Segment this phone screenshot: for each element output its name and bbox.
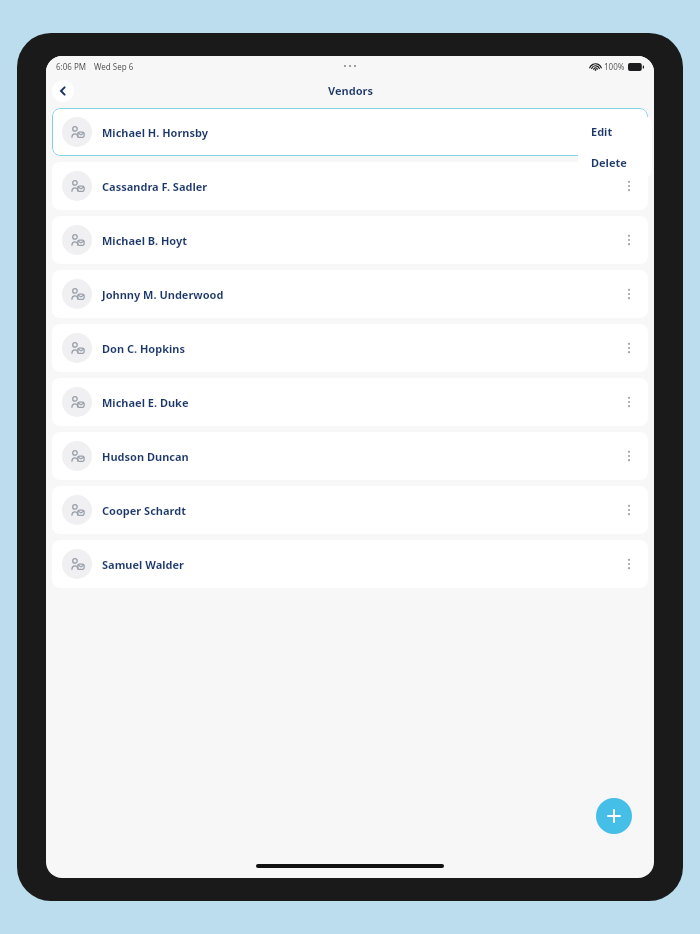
staticText: Cassandra F. Sadler [102, 179, 208, 194]
button[interactable]: Samuel Walder [52, 540, 648, 588]
button[interactable]: Delete [578, 147, 652, 178]
button[interactable]: More options [620, 225, 638, 255]
button[interactable]: Michael H. Hornsby [52, 108, 648, 156]
staticText: Michael H. Hornsby [102, 125, 209, 140]
button[interactable]: More options [620, 387, 638, 417]
staticText: Wed Sep 6 [94, 61, 134, 72]
staticText: Samuel Walder [102, 557, 184, 572]
button[interactable]: Don C. Hopkins [52, 324, 648, 372]
staticText: Michael E. Duke [102, 395, 189, 410]
button[interactable]: Edit [578, 116, 652, 147]
button[interactable]: More options [620, 333, 638, 363]
button[interactable]: More options [620, 171, 638, 201]
staticText: Johnny M. Underwood [102, 287, 224, 302]
staticText: Delete [591, 155, 627, 170]
staticText: Cooper Schardt [102, 503, 187, 518]
button[interactable]: Michael E. Duke [52, 378, 648, 426]
button[interactable]: More options [620, 495, 638, 525]
button[interactable]: More options [620, 279, 638, 309]
button[interactable]: More options [620, 549, 638, 579]
button[interactable]: Michael B. Hoyt [52, 216, 648, 264]
staticText: Michael B. Hoyt [102, 233, 188, 248]
button[interactable]: Add vendor [596, 798, 632, 834]
staticText: 100% [604, 61, 625, 72]
button[interactable]: Cooper Schardt [52, 486, 648, 534]
staticText: 6:06 PM [56, 61, 87, 72]
button[interactable]: Cassandra F. Sadler [52, 162, 648, 210]
staticText: Edit [591, 124, 613, 139]
button[interactable]: More options [620, 441, 638, 471]
button[interactable]: Johnny M. Underwood [52, 270, 648, 318]
staticText: Don C. Hopkins [102, 341, 185, 356]
staticText: Hudson Duncan [102, 449, 189, 464]
button[interactable]: Back [52, 80, 74, 102]
staticText: Vendors [328, 83, 373, 98]
button[interactable]: Hudson Duncan [52, 432, 648, 480]
